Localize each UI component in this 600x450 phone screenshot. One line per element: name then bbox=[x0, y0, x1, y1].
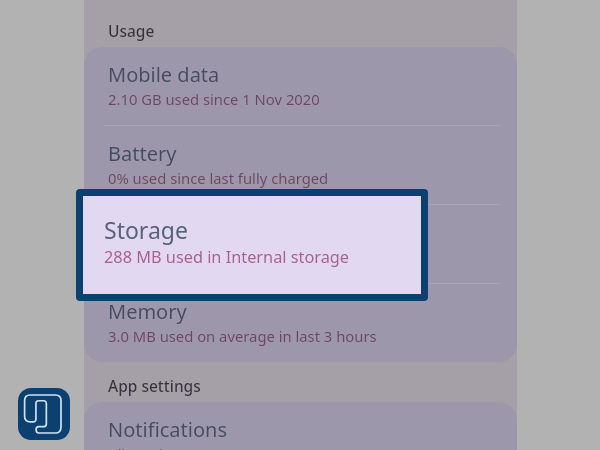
staticText: Notifications bbox=[108, 416, 227, 443]
staticText: 0% used since last fully charged bbox=[108, 168, 329, 188]
button[interactable]: Storage bbox=[83, 196, 421, 294]
staticText: Battery bbox=[108, 140, 177, 167]
staticText: App settings bbox=[108, 375, 201, 396]
staticText: Usage bbox=[108, 20, 155, 41]
staticText: Storage bbox=[108, 219, 181, 246]
staticText: 3.0 MB used on average in last 3 hours bbox=[108, 326, 377, 346]
button[interactable]: Storage bbox=[84, 205, 517, 283]
button[interactable]: Mobile data bbox=[84, 47, 517, 125]
button[interactable]: Battery bbox=[84, 126, 517, 204]
staticText: Mobile data bbox=[108, 61, 220, 88]
staticText: Allowed bbox=[108, 444, 163, 450]
staticText: Storage bbox=[104, 214, 188, 245]
staticText: 288 MB used in Internal storage bbox=[108, 247, 331, 267]
other: Logo bbox=[18, 388, 70, 440]
button[interactable]: Notifications bbox=[84, 402, 517, 450]
staticText: Memory bbox=[108, 298, 187, 325]
button[interactable]: Memory bbox=[84, 284, 517, 362]
staticText: 2.10 GB used since 1 Nov 2020 bbox=[108, 89, 320, 109]
staticText: 288 MB used in Internal storage bbox=[104, 246, 350, 268]
